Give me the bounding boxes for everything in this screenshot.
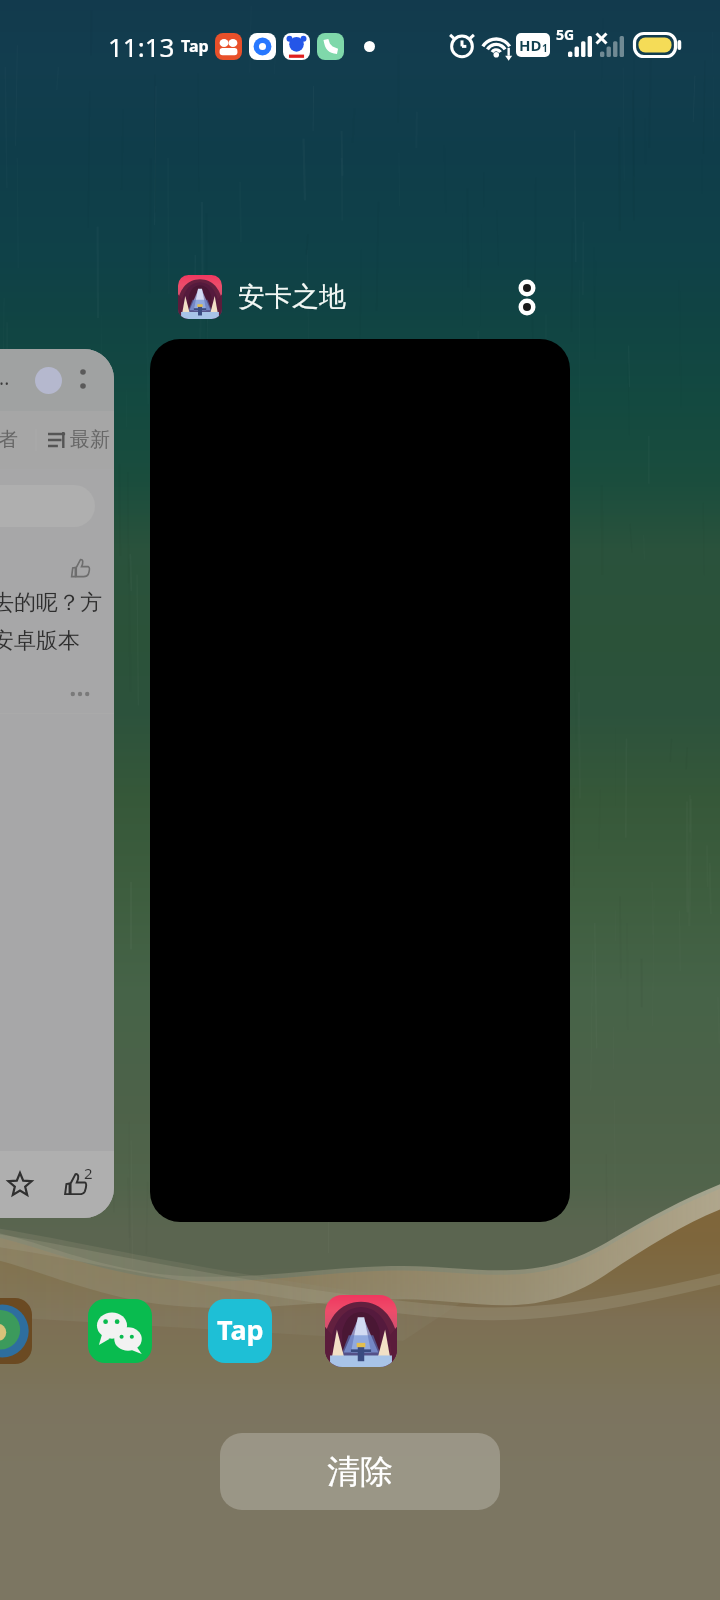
button[interactable]: WeChat (88, 1299, 152, 1363)
button[interactable]: 安卡之地 (325, 1295, 397, 1367)
staticText: 区... (0, 365, 10, 391)
staticText: Tap (217, 1311, 264, 1348)
staticText: 5G (556, 25, 575, 44)
button[interactable]: Game (0, 1298, 32, 1364)
staticText: 2 (84, 1163, 93, 1183)
staticText: 作者 (0, 427, 18, 452)
staticText: 和安卓版本 (0, 627, 80, 655)
staticText: 1 (542, 41, 548, 55)
button[interactable]: More options (505, 266, 549, 310)
staticText: 最新 (70, 427, 110, 452)
button[interactable]: 清除 (220, 1433, 500, 1510)
staticText: 不去的呢？方 (0, 589, 102, 617)
button[interactable]: 区... (0, 349, 114, 1218)
staticText: 11:13 (108, 29, 175, 64)
button[interactable] (150, 339, 570, 1222)
staticText: HD (519, 35, 542, 55)
button[interactable]: TapTap (208, 1299, 272, 1363)
staticText: 安卡之地 (238, 280, 346, 314)
staticText: Tap (181, 35, 209, 57)
button[interactable]: 安卡之地 (178, 272, 346, 322)
staticText: 清除 (327, 1451, 393, 1493)
